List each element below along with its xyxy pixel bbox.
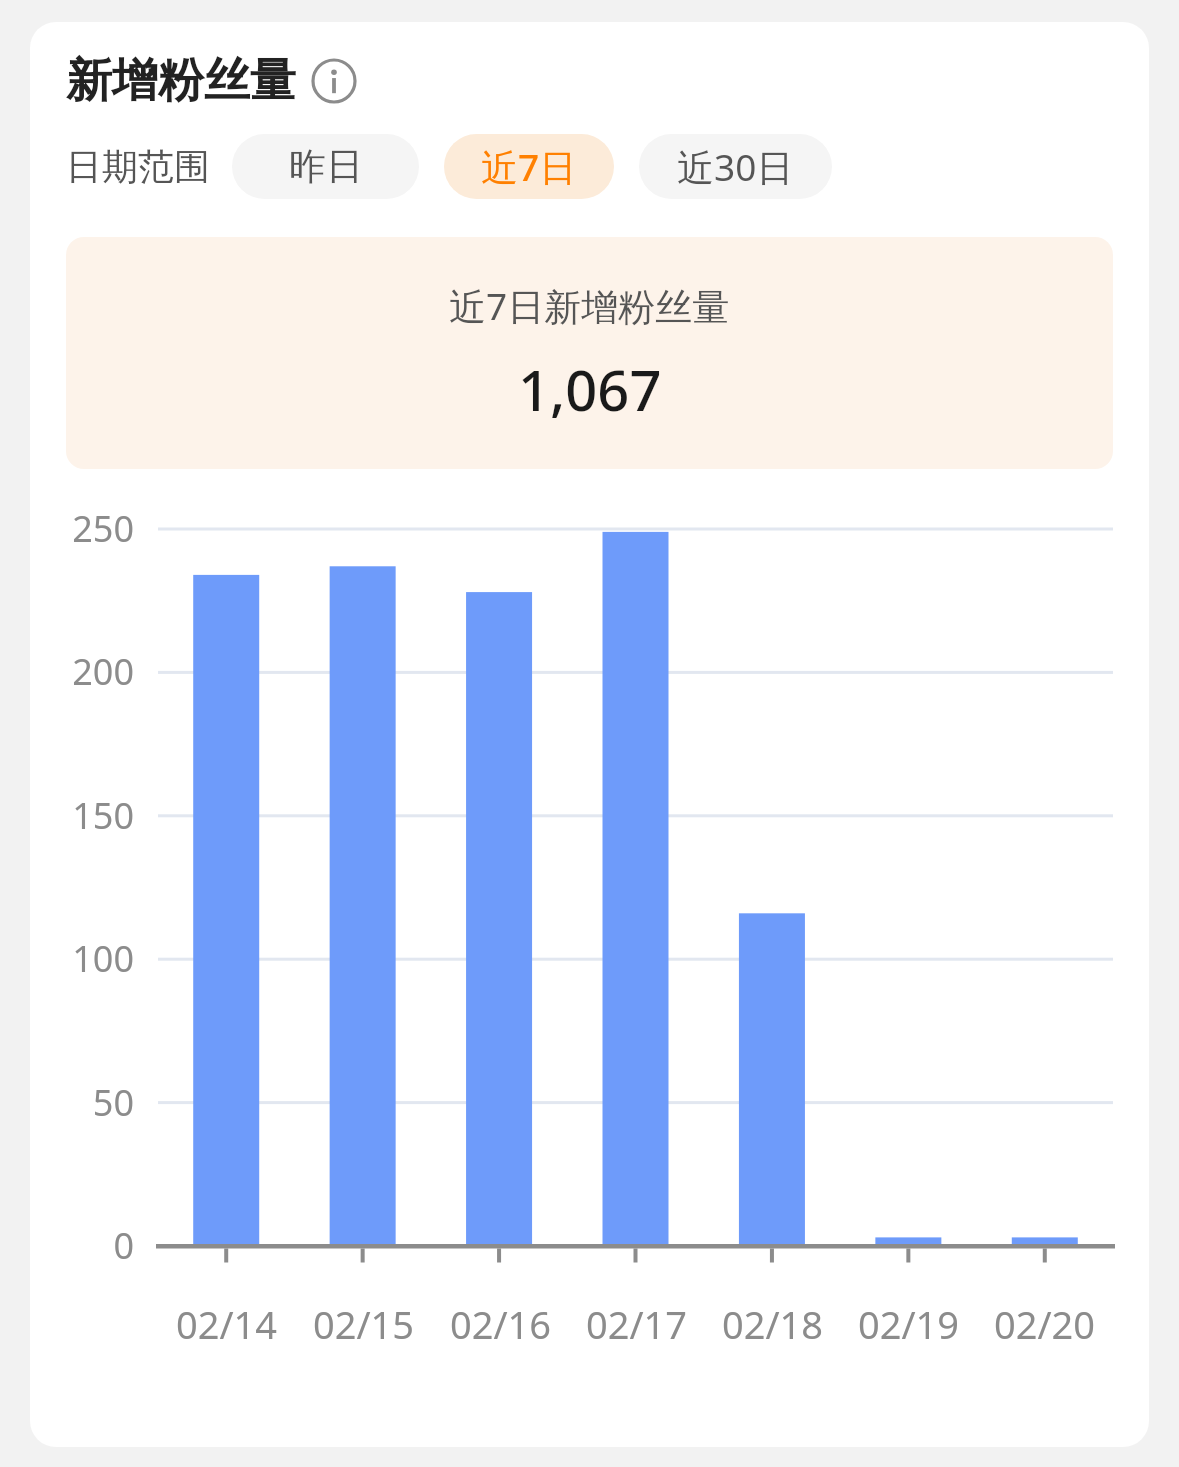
button[interactable]: 昨日 <box>232 134 419 199</box>
staticText: 昨日 <box>289 143 363 190</box>
staticText: 02/17 <box>586 1298 688 1350</box>
staticText: 02/16 <box>450 1298 552 1350</box>
staticText: 0 <box>30 1221 134 1270</box>
staticText: 02/18 <box>722 1298 824 1350</box>
staticText: 02/15 <box>313 1298 415 1350</box>
staticText: 02/20 <box>994 1298 1096 1350</box>
button[interactable]: 近30日 <box>639 134 832 199</box>
staticText: 日期范围 <box>66 144 210 189</box>
staticText: 1,067 <box>518 351 662 427</box>
staticText: 250 <box>30 504 134 553</box>
staticText: 近7日 <box>481 141 577 192</box>
staticText: 02/19 <box>858 1298 960 1350</box>
staticText: 100 <box>30 934 134 983</box>
staticText: 200 <box>30 647 134 696</box>
staticText: 50 <box>30 1078 134 1127</box>
button[interactable]: 近7日新增粉丝量 <box>66 237 1113 469</box>
staticText: 新增粉丝量 <box>66 52 296 110</box>
button[interactable]: 说明 <box>310 57 358 105</box>
staticText: 近30日 <box>677 141 794 192</box>
staticText: 150 <box>30 791 134 840</box>
staticText: 02/14 <box>176 1298 278 1350</box>
staticText: 近7日新增粉丝量 <box>449 280 730 331</box>
button[interactable]: 近7日 <box>444 134 614 199</box>
